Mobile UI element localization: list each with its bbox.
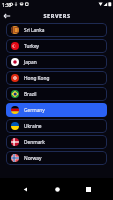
button[interactable]: Sri Lanka: [6, 23, 107, 37]
button[interactable]: Back: [2, 11, 12, 21]
button[interactable]: Recents: [81, 182, 95, 196]
button[interactable]: Denmark: [6, 135, 107, 149]
staticText: Norway: [24, 155, 42, 162]
staticText: Hong Kong: [24, 75, 50, 82]
button[interactable]: Ukraine: [6, 119, 107, 133]
staticText: Germany: [24, 107, 45, 114]
button[interactable]: Norway: [6, 151, 107, 165]
button[interactable]: Home: [50, 182, 64, 196]
staticText: Ukraine: [24, 123, 42, 130]
staticText: Denmark: [24, 139, 45, 146]
staticText: Brazil: [24, 91, 37, 98]
staticText: Japan: [24, 59, 37, 66]
staticText: Sri Lanka: [24, 27, 45, 34]
button[interactable]: Japan: [6, 55, 107, 69]
button[interactable]: Brazil: [6, 87, 107, 101]
staticText: SERVERS: [43, 12, 71, 19]
button[interactable]: Hong Kong: [6, 71, 107, 85]
button[interactable]: Turkey: [6, 39, 107, 53]
button[interactable]: Back: [18, 182, 32, 196]
staticText: 1:30: [2, 2, 12, 8]
button[interactable]: Germany: [6, 103, 107, 117]
staticText: Turkey: [24, 43, 39, 50]
